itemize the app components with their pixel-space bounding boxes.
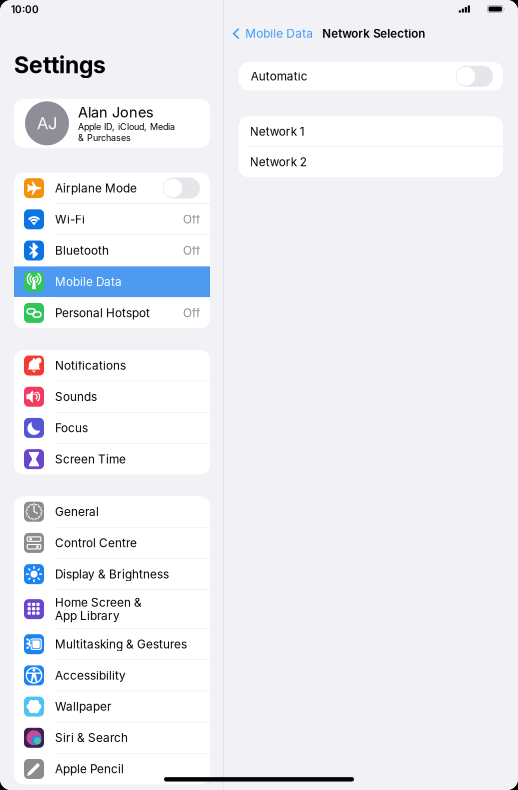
button[interactable]: Accessibility (14, 660, 210, 691)
button[interactable]: Screen Time (14, 444, 210, 474)
staticText: Sounds (55, 390, 97, 404)
staticText: Mobile Data (55, 275, 122, 289)
button[interactable]: Apple Pencil (14, 754, 210, 784)
staticText: Display & Brightness (55, 567, 169, 581)
staticText: Wallpaper (55, 699, 111, 714)
button[interactable]: Network 1 (239, 116, 503, 146)
button[interactable]: Sounds (14, 381, 210, 412)
staticText: Off (183, 243, 200, 258)
button[interactable]: Control Centre (14, 528, 210, 558)
button[interactable]: Personal Hotspot (14, 298, 210, 328)
button[interactable]: Airplane Mode (14, 173, 210, 203)
staticText: 10:00 (11, 3, 39, 16)
staticText: Home Screen & (55, 595, 142, 610)
staticText: Mobile Data (245, 26, 313, 41)
button[interactable]: Automatic (239, 62, 503, 90)
button[interactable]: Wi-Fi (14, 204, 210, 235)
button[interactable]: Display & Brightness (14, 559, 210, 589)
staticText: Apple Pencil (55, 762, 124, 776)
staticText: Network 1 (250, 124, 305, 139)
staticText: Airplane Mode (55, 181, 137, 195)
staticText: Bluetooth (55, 243, 109, 258)
button[interactable]: Network 2 (239, 147, 503, 177)
button[interactable]: General (14, 496, 210, 527)
button[interactable]: AJ (14, 99, 210, 148)
button[interactable]: Focus (14, 413, 210, 443)
staticText: Apple ID, iCloud, Media (78, 121, 175, 132)
staticText: Control Centre (55, 536, 137, 550)
staticText: Personal Hotspot (55, 306, 150, 320)
staticText: AJ (37, 113, 57, 133)
button[interactable]: Multitasking & Gestures (14, 629, 210, 659)
button[interactable]: Wallpaper (14, 691, 210, 722)
staticText: Wi-Fi (55, 212, 85, 226)
button[interactable]: Mobile Data (232, 26, 315, 41)
staticText: Network Selection (322, 26, 425, 40)
button[interactable]: Mobile Data (14, 266, 210, 297)
staticText: General (55, 505, 99, 519)
staticText: Accessibility (55, 668, 126, 682)
button[interactable]: Home Screen & (14, 590, 210, 628)
staticText: Off (183, 212, 200, 226)
staticText: Multitasking & Gestures (55, 637, 187, 651)
staticText: Off (183, 306, 200, 320)
button[interactable]: Siri & Search (14, 722, 210, 753)
button[interactable]: Notifications (14, 350, 210, 381)
staticText: & Purchases (78, 132, 131, 143)
staticText: Focus (55, 421, 88, 435)
button[interactable]: Bluetooth (14, 235, 210, 266)
staticText: Alan Jones (78, 104, 154, 121)
staticText: Automatic (251, 69, 308, 83)
staticText: Siri & Search (55, 731, 128, 745)
staticText: Network 2 (250, 155, 307, 169)
staticText: Screen Time (55, 452, 126, 466)
staticText: Notifications (55, 358, 126, 373)
staticText: App Library (55, 609, 120, 623)
staticText: Settings (14, 51, 106, 79)
